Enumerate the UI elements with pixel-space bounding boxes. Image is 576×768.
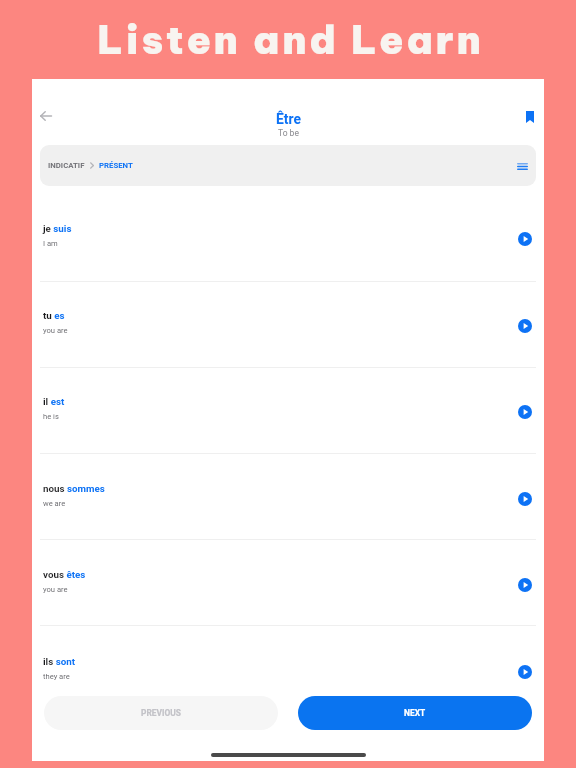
button[interactable]: PREVIOUS: [44, 696, 278, 730]
button[interactable]: Menu: [512, 156, 532, 176]
staticText: INDICATIF: [48, 161, 85, 170]
button[interactable]: il est: [32, 367, 544, 453]
button[interactable]: Play je suis: [512, 226, 538, 252]
staticText: Listen and Learn: [97, 15, 484, 65]
staticText: NEXT: [404, 708, 426, 718]
staticText: Être: [276, 111, 301, 127]
button[interactable]: Play nous sommes: [512, 486, 538, 512]
button[interactable]: Play ils sont: [512, 659, 538, 685]
button[interactable]: nous sommes: [32, 453, 544, 539]
staticText: PREVIOUS: [141, 708, 181, 718]
button[interactable]: Play il est: [512, 399, 538, 425]
staticText: you are: [43, 326, 68, 335]
staticText: we are: [43, 499, 66, 508]
staticText: il est: [43, 396, 65, 407]
staticText: you are: [43, 585, 68, 594]
button[interactable]: je suis: [32, 195, 544, 281]
button[interactable]: vous êtes: [32, 539, 544, 625]
button[interactable]: tu es: [32, 281, 544, 367]
staticText: je suis: [43, 223, 72, 234]
staticText: tu es: [43, 310, 65, 321]
staticText: PRÉSENT: [99, 161, 133, 170]
button[interactable]: NEXT: [298, 696, 532, 730]
staticText: vous êtes: [43, 569, 86, 580]
staticText: nous sommes: [43, 483, 105, 494]
staticText: To be: [278, 128, 299, 138]
button[interactable]: INDICATIF: [40, 145, 536, 186]
staticText: they are: [43, 672, 70, 681]
button[interactable]: Bookmark: [518, 105, 542, 129]
button[interactable]: ils sont: [32, 625, 544, 711]
button[interactable]: Back: [34, 104, 58, 128]
button[interactable]: Play vous êtes: [512, 572, 538, 598]
staticText: I am: [43, 239, 58, 248]
button[interactable]: Play tu es: [512, 313, 538, 339]
staticText: ils sont: [43, 656, 76, 667]
staticText: he is: [43, 412, 59, 421]
